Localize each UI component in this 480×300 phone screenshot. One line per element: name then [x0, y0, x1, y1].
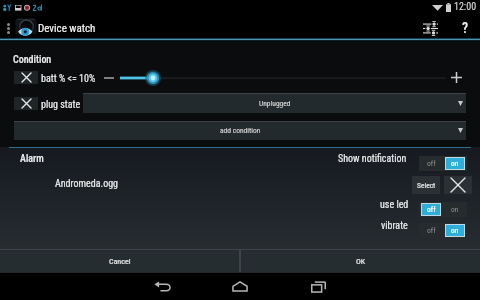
button[interactable]: Cancel	[0, 249, 239, 273]
button[interactable]: off	[419, 223, 443, 238]
button[interactable]: off	[419, 202, 443, 217]
button[interactable]: Recent apps	[279, 273, 357, 300]
staticText: add condition	[220, 126, 261, 135]
button[interactable]: Unplugged	[83, 93, 466, 113]
staticText: use led	[380, 199, 409, 211]
button[interactable]: on	[443, 156, 467, 171]
button[interactable]: Select	[412, 176, 440, 194]
staticText: on	[451, 159, 459, 168]
staticText: vibrate	[381, 220, 408, 232]
button[interactable]: Add condition	[448, 69, 465, 86]
staticText: plug state	[41, 99, 81, 111]
button[interactable]: on	[443, 223, 467, 238]
staticText: batt % <= 10%	[41, 73, 96, 85]
staticText: off	[427, 226, 436, 235]
button[interactable]: Back	[123, 273, 201, 300]
staticText: on	[451, 226, 459, 235]
staticText: Cancel	[109, 257, 131, 266]
staticText: on	[451, 205, 459, 214]
staticText: ?	[462, 20, 469, 36]
staticText: Select	[417, 181, 436, 190]
staticText: Show notification	[338, 153, 407, 165]
button[interactable]: Remove	[14, 71, 38, 84]
button[interactable]: Settings	[416, 14, 444, 42]
staticText: off	[427, 205, 436, 214]
button[interactable]: Remove	[444, 176, 472, 194]
staticText: Alarm	[20, 153, 44, 165]
staticText: 12:00	[454, 1, 477, 13]
staticText: Unplugged	[259, 99, 291, 108]
button[interactable]: off	[419, 156, 443, 171]
staticText: Device watch	[38, 22, 96, 35]
staticText: OK	[356, 257, 366, 266]
staticText: Andromeda.ogg	[55, 178, 119, 190]
staticText: off	[427, 159, 436, 168]
button[interactable]: Help	[451, 14, 479, 42]
button[interactable]: Home	[201, 273, 279, 300]
button[interactable]: OK	[241, 249, 480, 273]
button[interactable]: Remove	[14, 97, 38, 110]
button[interactable]: More options	[2, 14, 14, 42]
button[interactable]: on	[443, 202, 467, 217]
staticText: Condition	[13, 54, 52, 66]
button[interactable]: add condition	[14, 121, 466, 140]
